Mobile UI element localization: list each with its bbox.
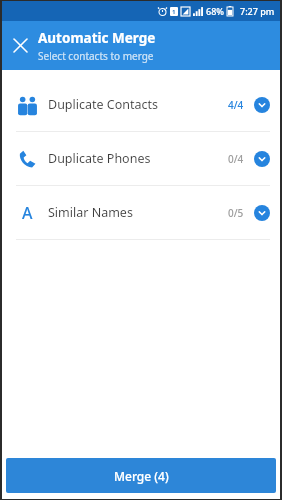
staticText: 68% — [206, 5, 224, 17]
button[interactable]: Expand Duplicate Contacts — [254, 97, 270, 113]
staticText: 4/4 — [228, 98, 244, 112]
staticText: 0/4 — [228, 152, 244, 166]
staticText: Duplicate Phones — [48, 150, 228, 167]
staticText: Similar Names — [48, 204, 228, 221]
button[interactable]: A — [2, 186, 280, 239]
staticText: Automatic Merge — [38, 29, 156, 47]
staticText: 7:27 pm — [240, 5, 275, 17]
staticText: Select contacts to merge — [38, 49, 154, 63]
staticText: 1 — [172, 8, 176, 16]
staticText: Merge (4) — [114, 468, 169, 484]
button[interactable]: Duplicate Phones — [2, 132, 280, 185]
button[interactable]: Merge (4) — [6, 458, 276, 493]
staticText: Duplicate Contacts — [48, 96, 228, 113]
button[interactable]: Expand Duplicate Phones — [254, 151, 270, 167]
staticText: 0/5 — [228, 206, 244, 220]
button[interactable]: Duplicate Contacts — [2, 78, 280, 131]
button[interactable]: Expand Similar Names — [254, 205, 270, 221]
button[interactable]: Close — [2, 21, 38, 70]
staticText: A — [22, 202, 33, 224]
